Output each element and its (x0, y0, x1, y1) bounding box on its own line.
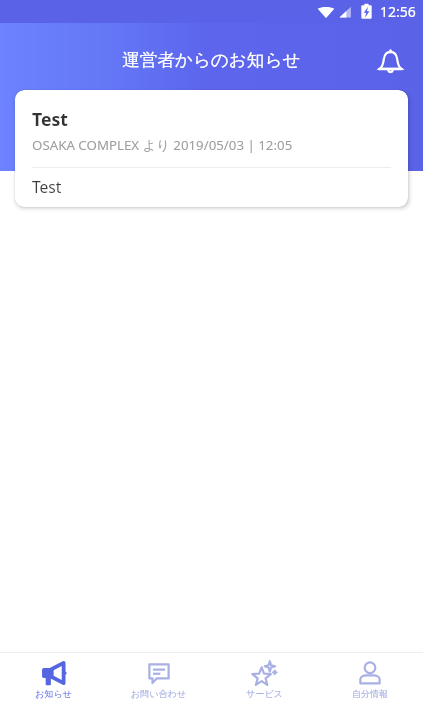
button[interactable]: お知らせ (1, 652, 106, 703)
staticText: 運営者からのお知らせ (122, 49, 301, 71)
staticText: 12:56 (380, 2, 416, 21)
staticText: サービス (246, 688, 283, 699)
staticText: Test (32, 107, 68, 131)
button[interactable]: 自分情報 (317, 652, 422, 703)
button[interactable]: Notifications (369, 40, 411, 82)
staticText: お問い合わせ (131, 688, 186, 699)
staticText: Test (32, 176, 62, 197)
staticText: 自分情報 (352, 688, 388, 699)
staticText: お知らせ (35, 688, 72, 699)
staticText: OSAKA COMPLEX より 2019/05/03 | 12:05 (32, 136, 293, 154)
button[interactable]: Test (15, 90, 408, 207)
button[interactable]: お問い合わせ (106, 652, 211, 703)
button[interactable]: サービス (212, 652, 317, 703)
